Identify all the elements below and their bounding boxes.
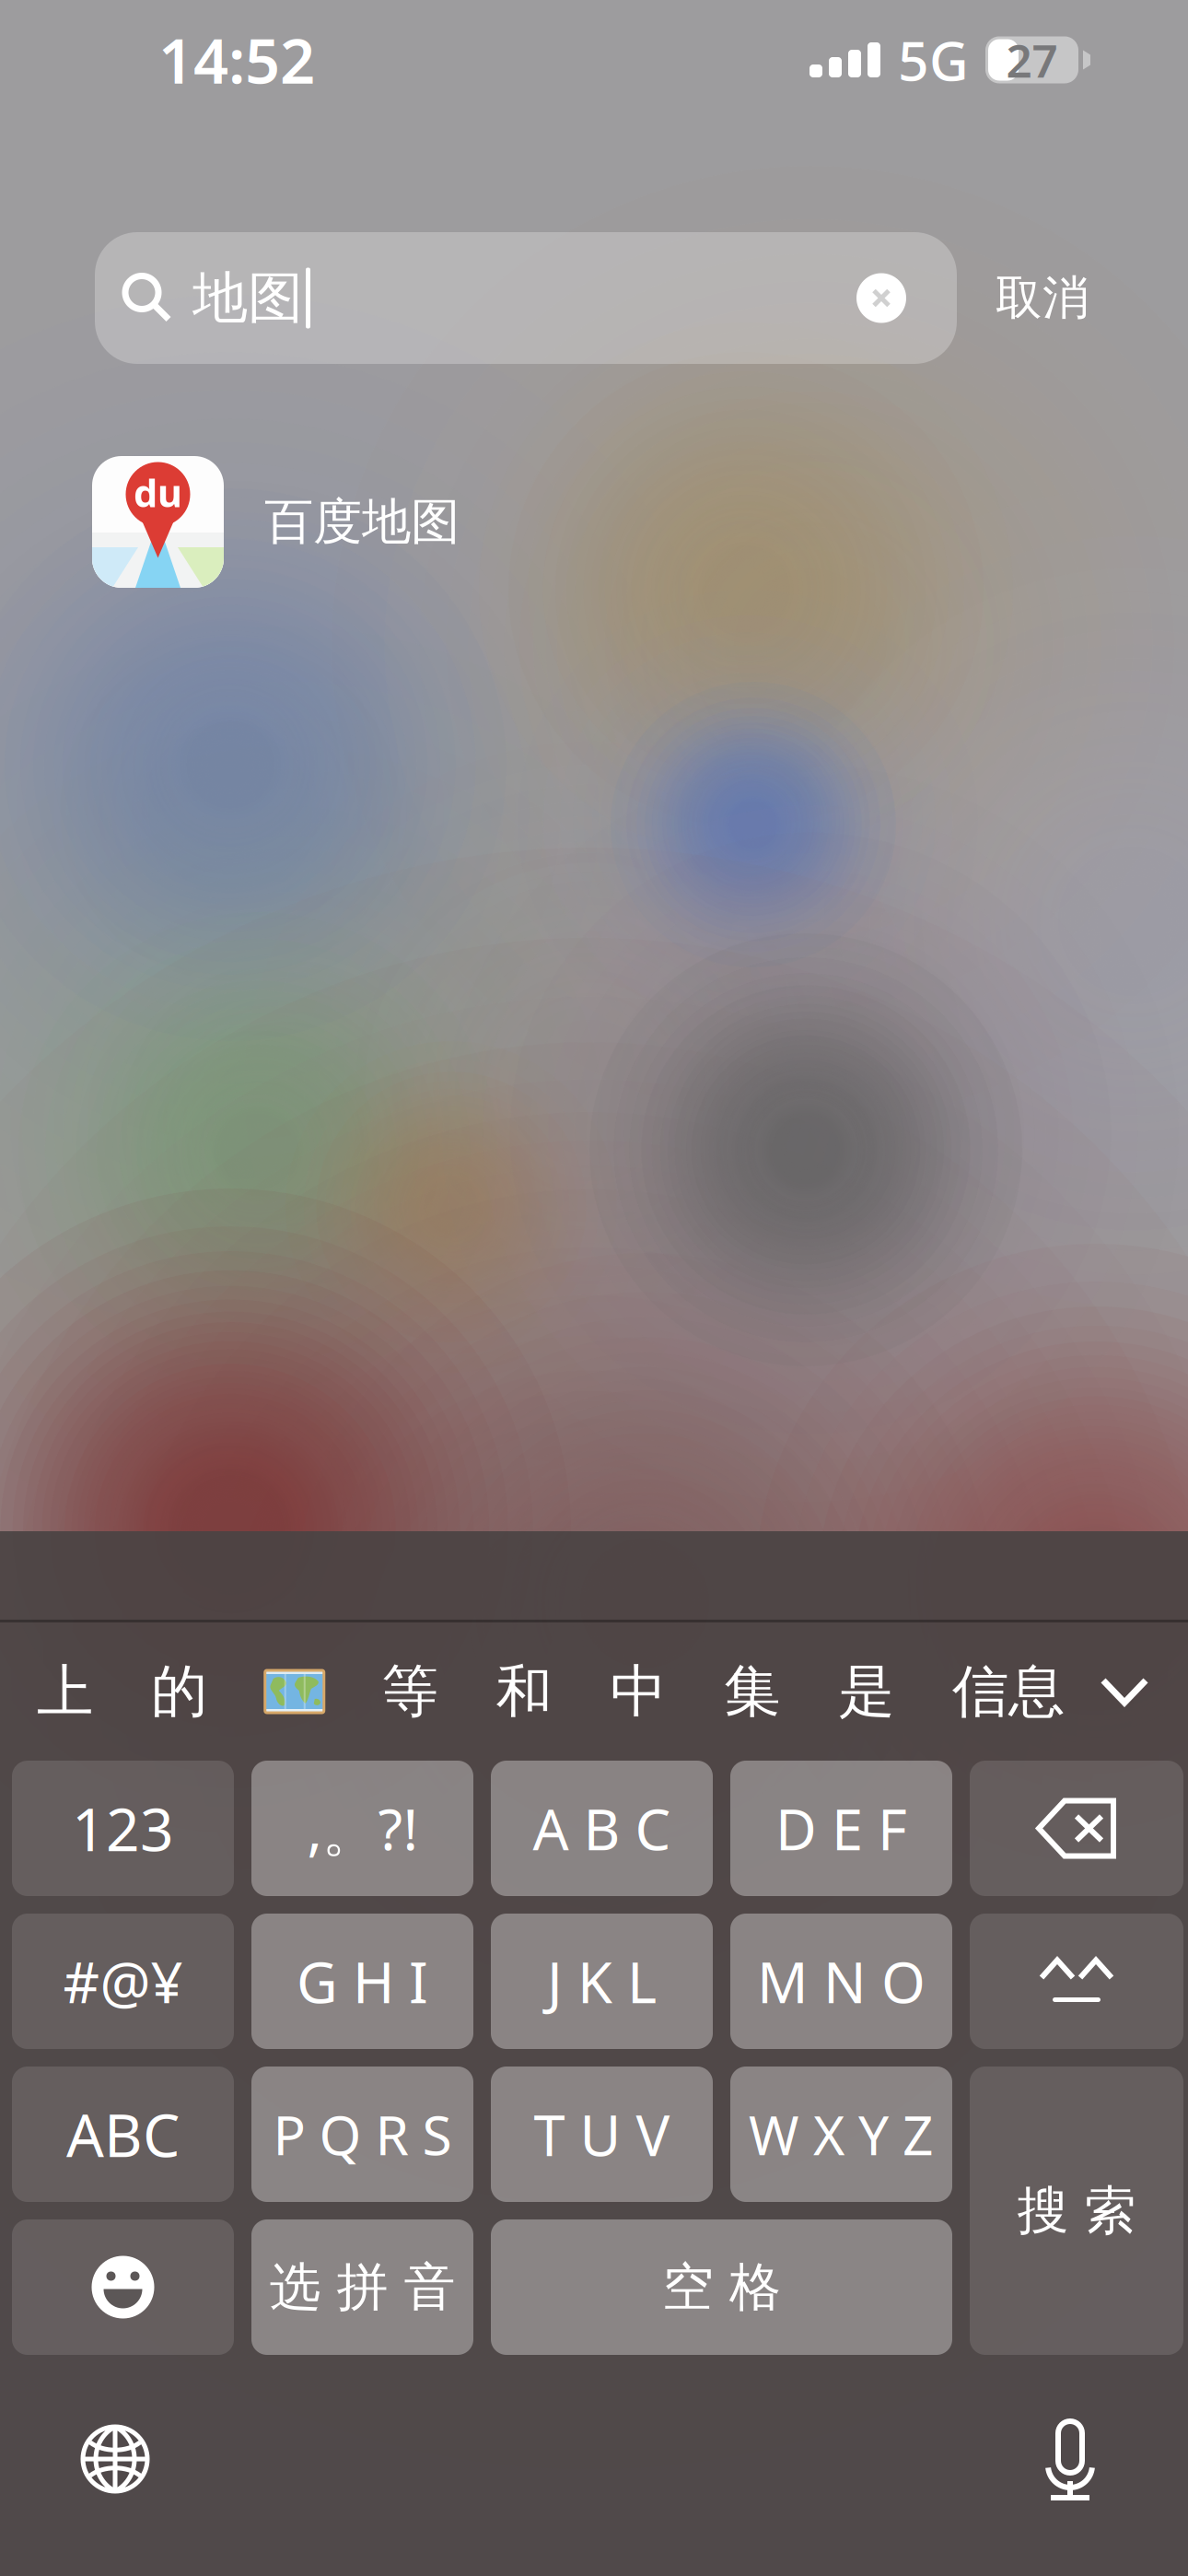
button[interactable]: Clear text	[856, 273, 906, 323]
button[interactable]: #@¥	[12, 1914, 234, 2049]
button[interactable]: du	[0, 456, 1188, 588]
staticText: 的	[151, 1657, 207, 1726]
staticText: G H I	[297, 1944, 428, 2019]
staticText: 空 格	[662, 2255, 781, 2319]
button[interactable]: 123	[12, 1761, 234, 1896]
button[interactable]: 集	[724, 1650, 780, 1733]
staticText: 5G	[898, 24, 969, 96]
button[interactable]: 选 拼 音	[251, 2219, 473, 2355]
staticText: du	[134, 467, 182, 518]
button[interactable]: G H I	[251, 1914, 473, 2049]
button[interactable]: 的	[151, 1650, 207, 1733]
button[interactable]: 和	[496, 1650, 552, 1733]
staticText: 中	[610, 1657, 666, 1726]
staticText: 是	[838, 1657, 894, 1726]
button[interactable]: T U V	[491, 2067, 713, 2202]
button[interactable]: Hide candidates	[1096, 1650, 1153, 1733]
staticText: T U V	[534, 2097, 670, 2172]
staticText: 14:52	[158, 19, 315, 101]
button[interactable]	[970, 1914, 1183, 2049]
staticText: ,。?!	[307, 1791, 418, 1866]
button[interactable]	[12, 2219, 234, 2355]
staticText: 地图	[192, 264, 303, 332]
staticText: M N O	[757, 1944, 926, 2019]
button[interactable]: 取消	[996, 232, 1089, 364]
staticText: 等	[382, 1657, 438, 1726]
staticText: 123	[72, 1789, 174, 1868]
button[interactable]: 搜 索	[970, 2067, 1183, 2355]
staticText: 百度地图	[264, 492, 460, 552]
button[interactable]: W X Y Z	[730, 2067, 952, 2202]
staticText: 搜 索	[1017, 2179, 1136, 2242]
button[interactable]: D E F	[730, 1761, 952, 1896]
button[interactable]: P Q R S	[251, 2067, 473, 2202]
button[interactable]: 上	[37, 1650, 93, 1733]
staticText: 选 拼 音	[269, 2255, 455, 2319]
staticText: 和	[496, 1657, 552, 1726]
button[interactable]: ABC	[12, 2067, 234, 2202]
button[interactable]: 中	[610, 1650, 666, 1733]
button[interactable]: J K L	[491, 1914, 713, 2049]
staticText: A B C	[533, 1791, 671, 1866]
staticText: 取消	[996, 269, 1089, 327]
button[interactable]: 信息	[952, 1650, 1065, 1733]
button[interactable]: Next keyboard	[55, 2399, 175, 2519]
button[interactable]: Map emoji	[265, 1670, 324, 1713]
staticText: 上	[37, 1657, 93, 1726]
staticText: ABC	[66, 2095, 180, 2173]
staticText: J K L	[547, 1944, 657, 2019]
button[interactable]: 等	[382, 1650, 438, 1733]
button[interactable]: 是	[838, 1650, 894, 1733]
staticText: 27	[1006, 30, 1058, 90]
button[interactable]: Dictation	[1010, 2399, 1130, 2519]
button[interactable]: 空 格	[491, 2219, 952, 2355]
staticText: #@¥	[63, 1944, 183, 2019]
button[interactable]: M N O	[730, 1914, 952, 2049]
staticText: 信息	[952, 1657, 1065, 1726]
button[interactable]: A B C	[491, 1761, 713, 1896]
staticText: W X Y Z	[749, 2098, 934, 2170]
staticText: D E F	[775, 1791, 907, 1866]
button[interactable]: ,。?!	[251, 1761, 473, 1896]
button[interactable]	[970, 1761, 1183, 1896]
staticText: 集	[724, 1657, 780, 1726]
staticText: P Q R S	[273, 2098, 452, 2170]
